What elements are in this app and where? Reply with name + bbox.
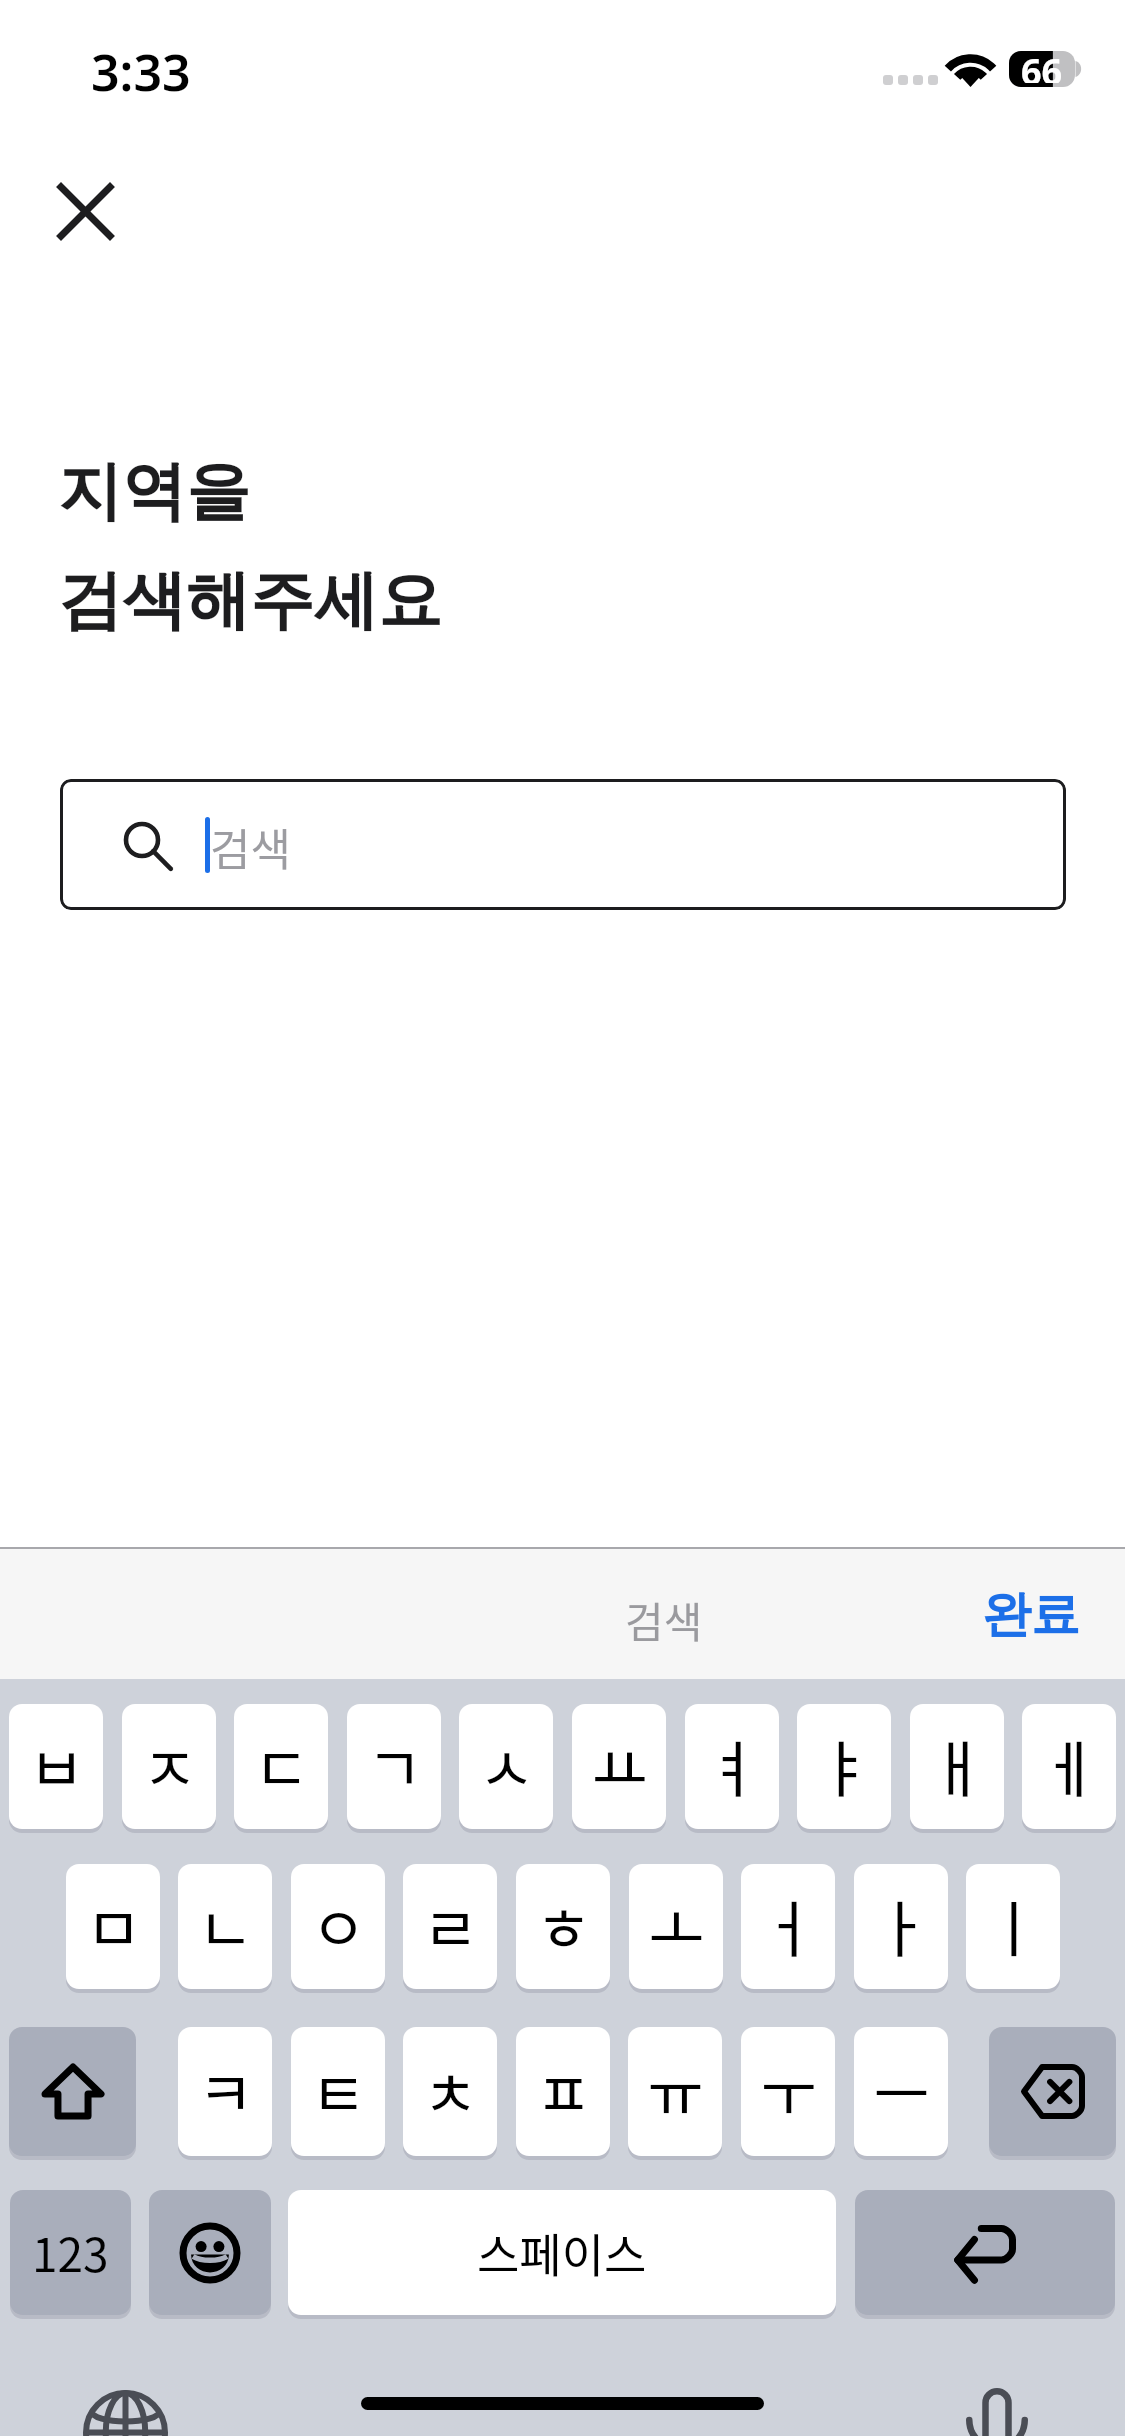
button[interactable]: Return: [855, 2190, 1115, 2315]
button[interactable]: ㅛ: [572, 1704, 666, 1829]
staticText: 지역을 검색해주세요: [58, 451, 442, 641]
button[interactable]: ㅔ: [1022, 1704, 1116, 1829]
button[interactable]: ㅈ: [122, 1704, 216, 1829]
button[interactable]: ㄱ: [347, 1704, 441, 1829]
staticText: ㅎ: [535, 1881, 592, 1969]
button[interactable]: Backspace: [989, 2027, 1116, 2156]
staticText: ㄹ: [422, 1881, 479, 1969]
button[interactable]: 완료: [966, 1565, 1096, 1665]
button[interactable]: Switch keyboard: [83, 2390, 168, 2436]
button[interactable]: 검색: [60, 779, 1066, 910]
button[interactable]: ㅋ: [178, 2027, 272, 2156]
staticText: ㅇ: [310, 1881, 367, 1969]
staticText: 66: [1021, 47, 1063, 83]
button[interactable]: Shift: [9, 2027, 136, 2156]
staticText: ㅓ: [760, 1881, 817, 1969]
staticText: ㅌ: [310, 2046, 367, 2134]
button[interactable]: ㅅ: [459, 1704, 553, 1829]
staticText: ㅗ: [648, 1881, 705, 1969]
staticText: ㅍ: [535, 2046, 592, 2134]
staticText: 123: [32, 2219, 109, 2286]
staticText: ㅕ: [704, 1721, 761, 1809]
button[interactable]: ㅐ: [910, 1704, 1004, 1829]
button[interactable]: ㅕ: [685, 1704, 779, 1829]
button[interactable]: ㅓ: [741, 1864, 835, 1989]
button[interactable]: ㅜ: [741, 2027, 835, 2156]
staticText: ㄴ: [197, 1881, 254, 1969]
staticText: 완료: [982, 1584, 1080, 1646]
staticText: ㅐ: [929, 1721, 986, 1809]
button[interactable]: ㅁ: [66, 1864, 160, 1989]
button[interactable]: ㅠ: [628, 2027, 722, 2156]
button[interactable]: 스페이스: [288, 2190, 836, 2315]
button[interactable]: ㅌ: [291, 2027, 385, 2156]
staticText: ㅡ: [873, 2046, 930, 2134]
staticText: 3:33: [91, 38, 191, 106]
button[interactable]: ㄴ: [178, 1864, 272, 1989]
staticText: 검색: [625, 1589, 703, 1650]
button[interactable]: ㅣ: [966, 1864, 1060, 1989]
button[interactable]: ㅍ: [516, 2027, 610, 2156]
button[interactable]: ㅗ: [629, 1864, 723, 1989]
staticText: ㅏ: [873, 1881, 930, 1969]
button[interactable]: ㄹ: [403, 1864, 497, 1989]
staticText: ㄷ: [253, 1721, 310, 1809]
button[interactable]: Emoji: [149, 2190, 271, 2315]
staticText: ㅈ: [141, 1721, 198, 1809]
button[interactable]: 123: [10, 2190, 131, 2315]
button[interactable]: Dictation: [966, 2388, 1028, 2436]
staticText: ㅔ: [1041, 1721, 1098, 1809]
staticText: ㄱ: [366, 1721, 423, 1809]
button[interactable]: ㄷ: [234, 1704, 328, 1829]
staticText: ㅣ: [985, 1881, 1042, 1969]
staticText: ㅅ: [478, 1721, 535, 1809]
button[interactable]: ㅇ: [291, 1864, 385, 1989]
staticText: ㅁ: [85, 1881, 142, 1969]
button[interactable]: Close: [38, 164, 133, 259]
button[interactable]: ㅑ: [797, 1704, 891, 1829]
button[interactable]: ㅎ: [516, 1864, 610, 1989]
staticText: ㅂ: [28, 1721, 85, 1809]
staticText: ㅋ: [197, 2046, 254, 2134]
staticText: ㅊ: [422, 2046, 479, 2134]
staticText: ㅠ: [647, 2046, 704, 2134]
staticText: 검색: [210, 815, 291, 879]
button[interactable]: ㅊ: [403, 2027, 497, 2156]
button[interactable]: ㅡ: [854, 2027, 948, 2156]
staticText: 스페이스: [477, 2219, 647, 2286]
staticText: ㅜ: [760, 2046, 817, 2134]
button[interactable]: ㅏ: [854, 1864, 948, 1989]
staticText: ㅑ: [816, 1721, 873, 1809]
staticText: ㅛ: [591, 1721, 648, 1809]
button[interactable]: ㅂ: [9, 1704, 103, 1829]
